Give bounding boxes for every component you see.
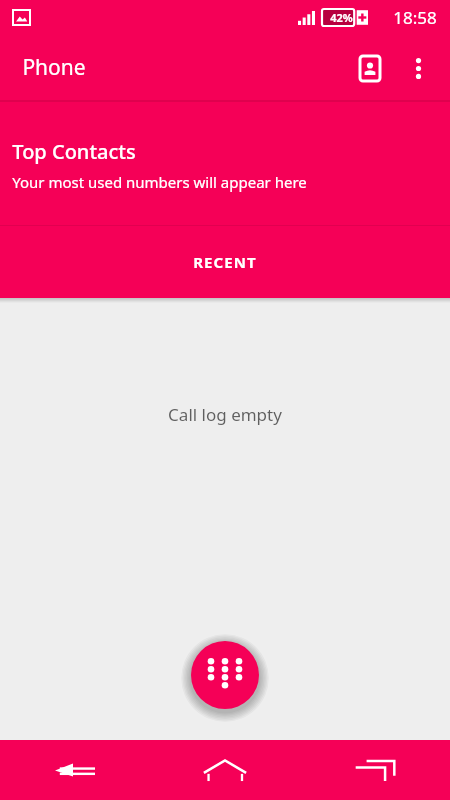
staticText: RECENT [193,252,257,272]
button[interactable]: Back [0,740,150,800]
button[interactable]: More options [394,44,442,92]
button[interactable]: Open dial pad [191,641,259,709]
staticText: 18:58 [393,6,437,29]
button[interactable]: Recent apps [300,740,450,800]
staticText: 42% [330,10,353,25]
staticText: Your most used numbers will appear here [12,172,307,192]
button[interactable]: Home [150,740,300,800]
staticText: Call log empty [168,403,282,426]
button[interactable]: Contacts [346,44,394,92]
button[interactable]: RECENT [0,226,450,298]
staticText: Top Contacts [12,138,136,165]
button[interactable]: Top Contacts [0,100,450,226]
staticText: Phone [22,53,86,82]
